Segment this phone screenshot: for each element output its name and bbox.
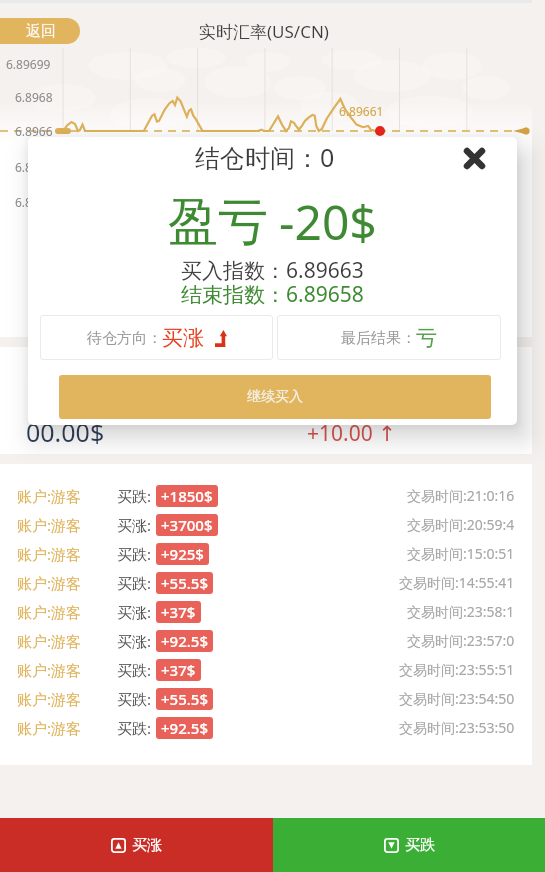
staticText: 6.8966 bbox=[15, 123, 53, 139]
staticText: 亏 bbox=[416, 325, 437, 351]
staticText: 交易时间:23:57:0 bbox=[407, 631, 515, 650]
button[interactable]: 买涨 bbox=[0, 818, 273, 872]
staticText: 买跌: bbox=[117, 544, 152, 564]
staticText: 交易时间:21:0:16 bbox=[407, 486, 515, 505]
button[interactable]: 返回 bbox=[0, 18, 80, 44]
staticText: +1850$ bbox=[161, 486, 213, 506]
staticText: 返回 bbox=[26, 22, 56, 41]
staticText: 买入指数：6.89663 bbox=[181, 256, 364, 285]
staticText: 买涨 bbox=[162, 325, 204, 351]
staticText: 交易时间:23:54:50 bbox=[399, 689, 515, 708]
button[interactable]: Close bbox=[459, 143, 489, 173]
staticText: 买涨: bbox=[117, 631, 152, 651]
staticText: +55.5$ bbox=[161, 689, 208, 709]
staticText: 买涨: bbox=[117, 602, 152, 622]
staticText: 6.89661 bbox=[339, 103, 384, 119]
staticText: +37$ bbox=[161, 602, 196, 622]
staticText: +10.00 ↑ bbox=[307, 419, 396, 448]
staticText: 交易时间:23:55:51 bbox=[399, 660, 515, 679]
staticText: 6.8964 bbox=[15, 159, 53, 175]
staticText: 买涨: bbox=[117, 515, 152, 535]
staticText: 00.00$ bbox=[26, 415, 105, 449]
staticText: +37$ bbox=[161, 660, 196, 680]
staticText: 最后结果： bbox=[341, 329, 416, 348]
staticText: +92.5$ bbox=[161, 631, 208, 651]
button[interactable]: 最后结果： bbox=[277, 315, 501, 360]
button[interactable]: 待仓方向： bbox=[40, 315, 273, 360]
staticText: 账户:游客 bbox=[17, 602, 82, 622]
button[interactable]: 账户:游客 bbox=[0, 510, 532, 539]
button[interactable]: 账户:游客 bbox=[0, 568, 532, 597]
button[interactable]: 账户:游客 bbox=[0, 626, 532, 655]
staticText: 实时汇率(US/CN) bbox=[199, 20, 329, 43]
staticText: -20$ bbox=[279, 189, 377, 254]
staticText: 买涨 bbox=[132, 836, 162, 855]
staticText: 交易时间:14:55:41 bbox=[399, 573, 515, 592]
staticText: 继续买入 bbox=[247, 388, 303, 406]
button[interactable]: 账户:游客 bbox=[0, 684, 532, 713]
staticText: 买跌: bbox=[117, 486, 152, 506]
staticText: 账户:游客 bbox=[17, 718, 82, 738]
staticText: 买跌: bbox=[117, 689, 152, 709]
staticText: 账户:游客 bbox=[17, 544, 82, 564]
staticText: 6.8968 bbox=[15, 89, 53, 105]
staticText: 买跌: bbox=[117, 573, 152, 593]
staticText: +925$ bbox=[161, 544, 204, 564]
staticText: 盈亏 bbox=[168, 191, 268, 254]
staticText: 买跌: bbox=[117, 660, 152, 680]
staticText: +3700$ bbox=[161, 515, 213, 535]
staticText: 买跌 bbox=[405, 836, 435, 855]
staticText: +92.5$ bbox=[161, 718, 208, 738]
staticText: 账户:游客 bbox=[17, 631, 82, 651]
staticText: 结束指数：6.89658 bbox=[181, 280, 364, 309]
staticText: 交易时间:23:53:50 bbox=[399, 718, 515, 737]
staticText: 交易时间:23:58:1 bbox=[407, 602, 515, 621]
button[interactable]: 账户:游客 bbox=[0, 597, 532, 626]
button[interactable]: 账户:游客 bbox=[0, 713, 532, 742]
staticText: 待仓方向： bbox=[87, 329, 162, 348]
button[interactable]: 账户:游客 bbox=[0, 481, 532, 510]
button[interactable]: 账户:游客 bbox=[0, 655, 532, 684]
staticText: 账户:游客 bbox=[17, 660, 82, 680]
staticText: 交易时间:15:0:51 bbox=[407, 544, 515, 563]
button[interactable]: 买跌 bbox=[273, 818, 545, 872]
staticText: 6.8962 bbox=[15, 194, 53, 210]
staticText: 结仓时间：0 bbox=[195, 140, 335, 174]
staticText: 买跌: bbox=[117, 718, 152, 738]
button[interactable]: 账户:游客 bbox=[0, 539, 532, 568]
button[interactable]: 继续买入 bbox=[59, 375, 491, 419]
staticText: 交易时间:20:59:4 bbox=[407, 515, 515, 534]
staticText: 6.89699 bbox=[6, 56, 51, 72]
staticText: 账户:游客 bbox=[17, 486, 82, 506]
staticText: +55.5$ bbox=[161, 573, 208, 593]
staticText: 账户:游客 bbox=[17, 573, 82, 593]
staticText: 账户:游客 bbox=[17, 689, 82, 709]
staticText: 账户:游客 bbox=[17, 515, 82, 535]
